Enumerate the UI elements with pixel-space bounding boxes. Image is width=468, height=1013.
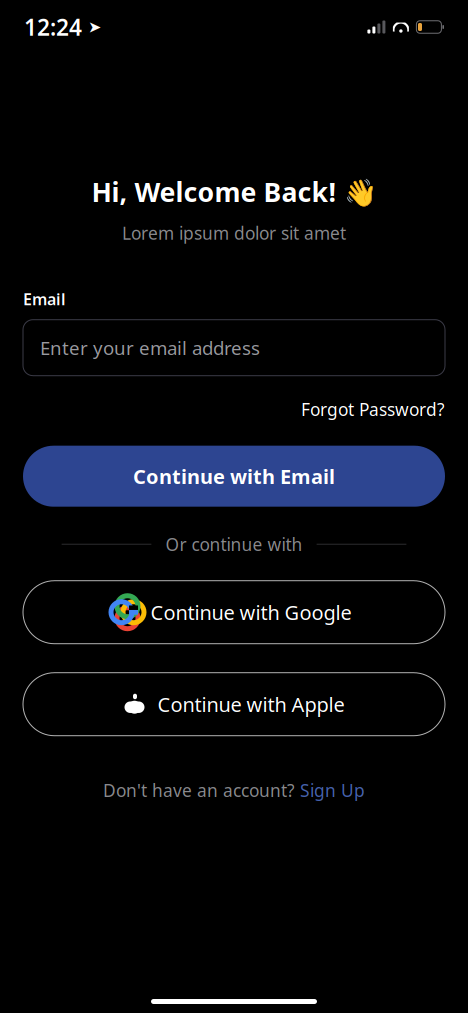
button[interactable]: Continue with Email xyxy=(23,446,445,507)
staticText: Continue with Apple xyxy=(157,691,344,717)
staticText: Hi, Welcome Back! 👋 xyxy=(91,174,376,209)
staticText: Sign Up xyxy=(300,779,365,802)
staticText: Continue with Google xyxy=(150,599,351,625)
staticText: Email xyxy=(23,288,66,310)
staticText: 12:24 xyxy=(24,12,82,42)
staticText: Forgot Password? xyxy=(301,398,445,421)
staticText: Don't have an account? xyxy=(103,779,295,802)
staticText: Or continue with xyxy=(165,533,302,556)
button[interactable]: Forgot Password? xyxy=(301,394,445,425)
button[interactable]: Don't have an account? xyxy=(103,775,365,806)
button[interactable]: Continue with Google xyxy=(23,581,445,644)
staticText: ➤ xyxy=(82,18,101,36)
staticText: Continue with Email xyxy=(133,463,335,489)
staticText: Enter your email address xyxy=(40,335,260,360)
button[interactable]: Continue with Apple xyxy=(23,673,445,736)
staticText: Lorem ipsum dolor sit amet xyxy=(122,221,346,244)
